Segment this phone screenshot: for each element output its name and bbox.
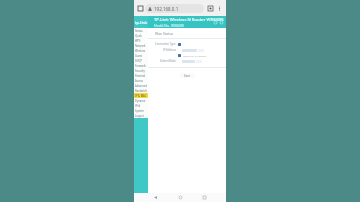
staticText: Guest Network <box>135 54 147 58</box>
button[interactable]: Access Control <box>134 78 148 83</box>
button[interactable]: More options <box>216 5 223 12</box>
button[interactable]: IP & MAC Binding <box>134 93 148 98</box>
staticText: 192.168.0.1 <box>154 6 179 12</box>
staticText: Connection Type <box>155 42 176 46</box>
button[interactable]: Tabs <box>137 5 143 11</box>
button[interactable]: 192.168.0.1 <box>145 4 204 13</box>
staticText: WPS <box>135 39 141 43</box>
button[interactable]: Header action <box>219 20 223 24</box>
button[interactable]: Back <box>152 194 159 201</box>
staticText: Bandwidth Control <box>135 89 147 93</box>
button[interactable]: Bandwidth Control <box>134 88 148 93</box>
staticText: Status <box>135 29 143 33</box>
staticText: IP Address <box>163 48 176 52</box>
staticText: Forwarding <box>135 64 147 68</box>
staticText: Save <box>184 74 191 78</box>
button[interactable]: Toggle option <box>178 54 181 57</box>
staticText: IP & MAC Binding <box>135 94 147 98</box>
button[interactable]: Recent apps <box>201 194 208 201</box>
staticText: Model No. WR840N <box>154 24 184 28</box>
button[interactable]: Status <box>134 28 148 33</box>
button[interactable]: Wireless <box>134 48 148 53</box>
button[interactable]: Home <box>177 194 184 201</box>
staticText: TP-Link Wireless N Router WR840N <box>154 17 224 23</box>
button[interactable]: Dynamic DNS <box>134 98 148 103</box>
staticText: Obtain an IP address automatically <box>183 54 222 57</box>
button[interactable]: Forwarding <box>134 63 148 68</box>
button[interactable]: IPv6 Support <box>134 103 148 108</box>
button[interactable]: WPS <box>134 38 148 43</box>
button[interactable]: Guest Network <box>134 53 148 58</box>
button[interactable]: Parental Control <box>134 73 148 78</box>
staticText: System Tools <box>135 109 147 113</box>
staticText: Parental Control <box>135 74 147 78</box>
button[interactable]: DHCP <box>134 58 148 63</box>
button[interactable]: Header action <box>213 20 217 24</box>
staticText: DHCP <box>135 59 143 63</box>
staticText: Dynamic DNS <box>135 99 147 103</box>
button[interactable]: tp-link <box>134 16 148 28</box>
button[interactable]: Save <box>180 73 195 78</box>
staticText: Security <box>135 69 145 73</box>
button[interactable]: System Tools <box>134 108 148 113</box>
staticText: Subnet Mask <box>160 59 176 63</box>
button[interactable]: Logout <box>134 113 148 118</box>
staticText: Quick Setup <box>135 34 147 38</box>
button[interactable]: Quick Setup <box>134 33 148 38</box>
button[interactable]: Advanced Routing <box>134 83 148 88</box>
button[interactable]: Network <box>134 43 148 48</box>
staticText: Advanced Routing <box>135 84 147 88</box>
staticText: Logout <box>135 114 144 118</box>
button[interactable]: Security <box>134 68 148 73</box>
staticText: Wan Status <box>155 31 174 36</box>
staticText: Network <box>135 44 146 48</box>
staticText: Wireless <box>135 49 146 53</box>
staticText: Access Control <box>135 79 147 83</box>
button[interactable]: Toggle option <box>178 43 181 46</box>
button[interactable]: Search by image <box>207 5 214 12</box>
staticText: tp-link <box>135 20 148 25</box>
staticText: IPv6 Support <box>135 104 147 108</box>
